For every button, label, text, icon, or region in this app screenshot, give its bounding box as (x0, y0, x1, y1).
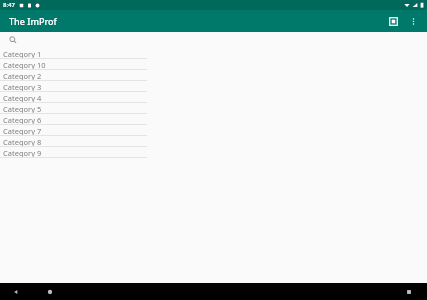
button[interactable]: Category 8 (0, 136, 147, 147)
button[interactable]: Category 1 (0, 48, 147, 59)
button[interactable]: Category 9 (0, 147, 147, 158)
button[interactable]: Category 2 (0, 70, 147, 81)
button[interactable]: Home (42, 284, 58, 300)
button[interactable]: Category 10 (0, 59, 147, 70)
staticText: Category 10 (3, 60, 46, 70)
button[interactable]: Category 4 (0, 92, 147, 103)
staticText: Category 7 (3, 126, 42, 136)
button[interactable]: Category 6 (0, 114, 147, 125)
staticText: Category 3 (3, 82, 42, 92)
button[interactable]: Category 7 (0, 125, 147, 136)
staticText: Category 2 (3, 71, 42, 81)
staticText: Category 5 (3, 104, 42, 114)
button[interactable]: Category 5 (0, 103, 147, 114)
staticText: The ImProf (9, 15, 57, 27)
staticText: Category 9 (3, 148, 42, 158)
staticText: Category 1 (3, 49, 42, 59)
staticText: Category 8 (3, 137, 42, 147)
button[interactable]: More options (403, 11, 423, 31)
staticText: Category 4 (3, 93, 42, 103)
button[interactable]: Back (8, 284, 24, 300)
button[interactable]: Category 3 (0, 81, 147, 92)
button[interactable]: Recent apps (401, 284, 417, 300)
button[interactable]: Select view (383, 11, 403, 31)
staticText: Category 6 (3, 115, 42, 125)
button[interactable]: Search (6, 33, 20, 47)
staticText: 8:47 (3, 1, 15, 9)
